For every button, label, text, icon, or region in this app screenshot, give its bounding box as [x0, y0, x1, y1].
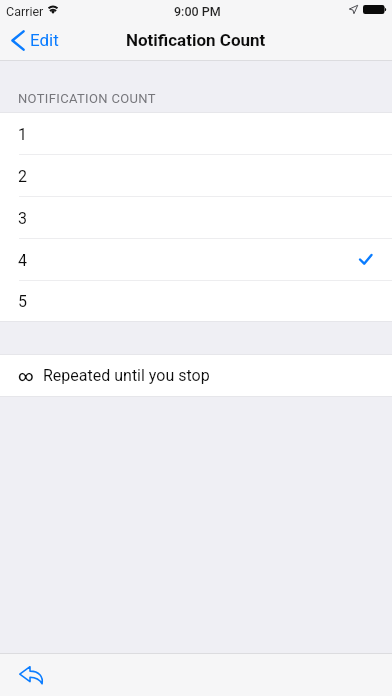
staticText: Notification Count — [126, 30, 266, 50]
staticText: Repeated until you stop — [43, 366, 210, 385]
button[interactable]: 5 — [0, 281, 392, 321]
staticText: 4 — [18, 251, 27, 270]
staticText: 2 — [18, 167, 27, 186]
staticText: Carrier — [6, 4, 44, 19]
staticText: 3 — [18, 209, 27, 228]
button[interactable]: 1 — [0, 113, 392, 155]
staticText: 5 — [18, 292, 27, 311]
button[interactable]: Edit — [11, 24, 59, 55]
button[interactable]: Undo — [7, 655, 55, 695]
button[interactable]: 3 — [0, 197, 392, 239]
staticText: ∞ — [18, 367, 31, 385]
button[interactable]: 2 — [0, 155, 392, 197]
button[interactable]: 4 — [0, 239, 392, 281]
staticText: 9:00 PM — [174, 4, 221, 19]
button[interactable]: ∞ — [0, 355, 392, 396]
staticText: NOTIFICATION COUNT — [18, 91, 156, 106]
staticText: 1 — [18, 125, 27, 144]
staticText: Edit — [30, 30, 59, 50]
